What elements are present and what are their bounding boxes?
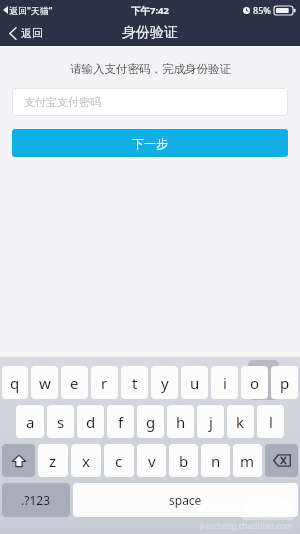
staticText: e	[70, 373, 79, 393]
staticText: o	[250, 373, 260, 393]
staticText: 返回	[21, 26, 43, 40]
staticText: 下午7:42	[131, 4, 169, 17]
button[interactable]: space	[73, 483, 298, 517]
staticText: p	[280, 373, 290, 393]
staticText: c	[115, 451, 123, 471]
staticText: 教程网	[245, 501, 290, 520]
button[interactable]: c	[104, 444, 134, 477]
button[interactable]: u	[181, 366, 208, 399]
button[interactable]: 支付宝支付密码	[12, 88, 288, 116]
staticText: b	[179, 451, 189, 471]
button[interactable]: n	[201, 444, 230, 477]
button[interactable]: 下一步	[12, 129, 288, 157]
staticText: space	[169, 492, 202, 508]
button[interactable]: 返回	[0, 22, 55, 44]
staticText: l	[269, 412, 273, 432]
button[interactable]: j	[197, 405, 224, 438]
button[interactable]: t	[121, 366, 148, 399]
staticText: 查字典	[194, 501, 239, 520]
button[interactable]: k	[227, 405, 254, 438]
button[interactable]: r	[91, 366, 118, 399]
button[interactable]: x	[71, 444, 101, 477]
button[interactable]: o	[241, 366, 268, 399]
button[interactable]: a	[16, 405, 44, 438]
button[interactable]: m	[233, 444, 262, 477]
button[interactable]: b	[169, 444, 198, 477]
button[interactable]: d	[77, 405, 104, 438]
staticText: i	[223, 373, 227, 393]
staticText: r	[101, 373, 108, 393]
button[interactable]: q	[2, 366, 28, 399]
staticText: m	[240, 451, 255, 471]
button[interactable]: e	[61, 366, 88, 399]
staticText: .?123	[21, 492, 51, 508]
staticText: 85%	[253, 4, 271, 16]
button[interactable]: z	[38, 444, 68, 477]
button[interactable]: Shift	[2, 444, 35, 477]
staticText: g	[146, 412, 156, 432]
staticText: d	[86, 412, 96, 432]
staticText: 身份验证	[122, 24, 178, 42]
staticText: 下一步	[132, 136, 168, 151]
staticText: h	[176, 412, 186, 432]
staticText: t	[132, 373, 138, 393]
staticText: k	[236, 412, 245, 432]
button[interactable]: f	[107, 405, 134, 438]
staticText: j	[209, 412, 213, 432]
staticText: 支付宝支付密码	[24, 95, 101, 109]
staticText: n	[211, 451, 221, 471]
staticText: a	[26, 412, 35, 432]
staticText: u	[190, 373, 200, 393]
staticText: z	[49, 451, 57, 471]
button[interactable]: .?123	[2, 483, 70, 517]
staticText: 请输入支付密码，完成身份验证	[70, 62, 231, 76]
staticText: v	[148, 451, 156, 471]
staticText: f	[118, 412, 124, 432]
button[interactable]: s	[47, 405, 74, 438]
staticText: y	[161, 373, 169, 393]
button[interactable]: y	[151, 366, 178, 399]
button[interactable]: h	[167, 405, 194, 438]
button[interactable]: p	[271, 366, 298, 399]
staticText: jiaocheng.chazidian.com	[200, 520, 293, 531]
staticText: s	[57, 412, 65, 432]
staticText: q	[10, 373, 20, 393]
staticText: 返回"天猫"	[9, 4, 53, 16]
button[interactable]: w	[31, 366, 58, 399]
button[interactable]: g	[137, 405, 164, 438]
button[interactable]: v	[137, 444, 166, 477]
staticText: x	[82, 451, 90, 471]
button[interactable]: i	[211, 366, 238, 399]
button[interactable]: l	[257, 405, 284, 438]
staticText: w	[39, 373, 51, 393]
button[interactable]: Backspace	[265, 444, 298, 477]
